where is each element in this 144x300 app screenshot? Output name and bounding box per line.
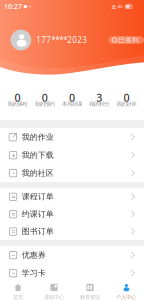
button[interactable]: 0	[58, 93, 86, 106]
button[interactable]: 我的下载	[0, 146, 144, 164]
staticText: 0	[123, 90, 129, 105]
staticText: 首页	[13, 294, 23, 300]
staticText: 我的预约	[35, 101, 55, 107]
staticText: 个人中心	[116, 294, 136, 300]
staticText: 本周到课	[62, 101, 82, 107]
staticText: 3	[96, 90, 102, 105]
staticText: 约课订单	[22, 209, 54, 219]
button[interactable]: 0	[31, 93, 58, 106]
button[interactable]: 教育资讯	[72, 282, 108, 300]
button[interactable]: 首页	[0, 282, 36, 300]
staticText: 教育资讯	[80, 294, 100, 300]
button[interactable]: 3	[86, 93, 113, 106]
button[interactable]: 已签到	[109, 36, 144, 44]
button[interactable]: 个人中心	[108, 282, 144, 300]
button[interactable]: 优惠券	[0, 246, 144, 264]
button[interactable]: 我的社区	[0, 164, 144, 182]
button[interactable]: 学习卡	[0, 264, 144, 282]
button[interactable]: 0	[113, 93, 140, 106]
staticText: 10:27	[4, 2, 22, 11]
staticText: 我的下载	[22, 150, 54, 160]
staticText: 0	[15, 90, 21, 105]
button[interactable]: 课程中心	[36, 282, 72, 300]
button[interactable]: 课程订单	[0, 188, 144, 205]
button[interactable]: 约课订单	[0, 205, 144, 223]
staticText: 我的积分	[89, 101, 109, 107]
staticText: 0	[42, 90, 48, 105]
button[interactable]: 图书订单	[0, 223, 144, 240]
button[interactable]: 0	[4, 93, 31, 106]
staticText: 4G	[117, 4, 122, 9]
button[interactable]: 我的作业	[0, 128, 144, 146]
staticText: 0	[69, 90, 75, 105]
staticText: 我的社区	[22, 168, 54, 178]
staticText: 我的课程	[8, 101, 28, 107]
staticText: 课程中心	[44, 294, 64, 300]
staticText: 我的好评	[116, 101, 136, 107]
staticText: 图书订单	[22, 226, 54, 236]
staticText: 课程订单	[22, 192, 54, 202]
staticText: 已签到	[118, 36, 139, 44]
staticText: 我的作业	[22, 132, 54, 142]
staticText: 学习卡	[22, 268, 46, 278]
staticText: 177****2023	[36, 35, 87, 45]
staticText: 优惠券	[22, 250, 46, 260]
